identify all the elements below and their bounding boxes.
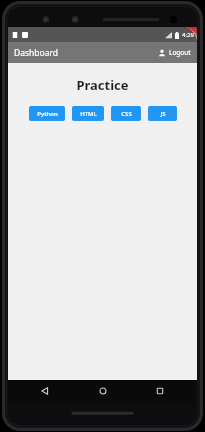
button[interactable]: CSS [111,106,141,121]
button[interactable]: HTML [72,106,104,121]
staticText: CSS [121,110,132,118]
button[interactable]: Back [25,380,65,402]
button[interactable]: Recent apps [140,380,180,402]
button[interactable]: JS [148,106,177,121]
staticText: Dashboard [14,47,59,59]
staticText: JS [160,110,166,118]
staticText: Logout [169,48,191,57]
staticText: Practice [76,76,129,94]
other: Account [158,49,166,57]
button[interactable]: Account [152,45,197,60]
staticText: 4:29 [182,31,194,39]
staticText: Python [37,110,58,118]
staticText: HTML [80,110,97,118]
button[interactable]: Python [29,106,65,121]
button[interactable]: Home [83,380,123,402]
